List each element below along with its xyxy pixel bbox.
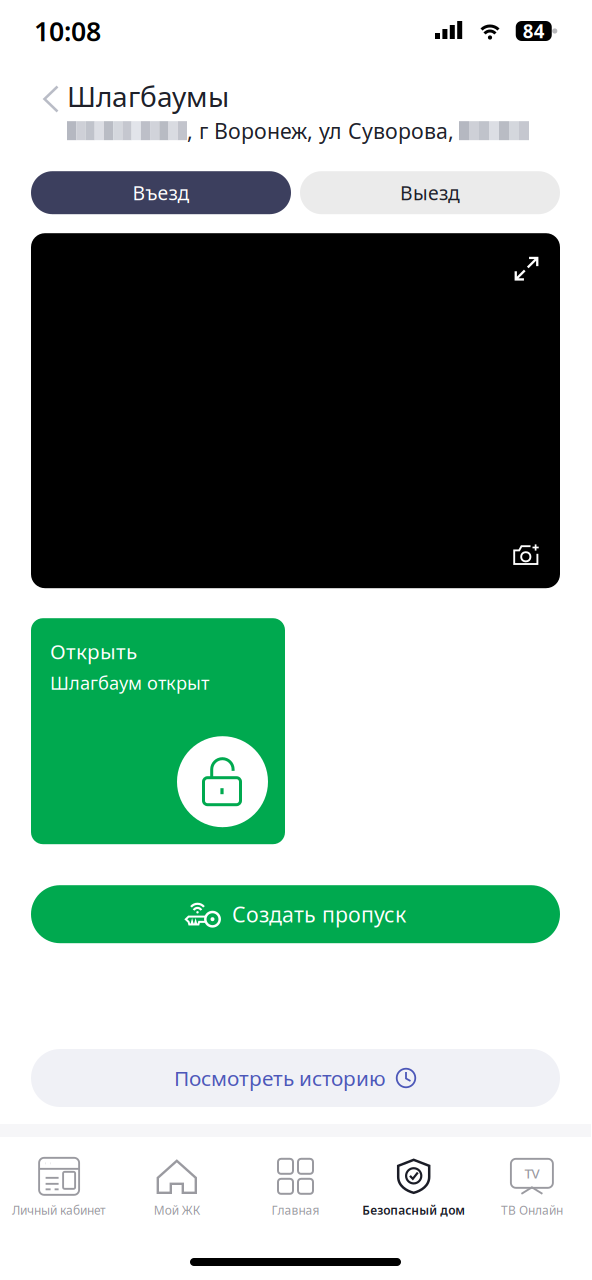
staticText: Личный кабинет: [12, 1202, 106, 1218]
button[interactable]: Снимок: [513, 544, 539, 565]
staticText: ТВ Онлайн: [501, 1202, 563, 1218]
staticText: Посмотреть историю: [174, 1064, 386, 1092]
staticText: Безопасный дом: [362, 1202, 465, 1218]
button[interactable]: Мой ЖК: [118, 1149, 236, 1226]
staticText: Главная: [271, 1202, 319, 1218]
staticText: TV: [524, 1164, 539, 1182]
staticText: Шлагбаум открыт: [50, 670, 209, 695]
button[interactable]: Личный кабинет: [0, 1149, 118, 1226]
button[interactable]: Создать пропуск: [31, 885, 560, 943]
button[interactable]: Посмотреть историю: [31, 1049, 560, 1107]
staticText: Открыть: [50, 637, 137, 665]
staticText: Въезд: [132, 179, 189, 206]
button[interactable]: Въезд: [31, 171, 291, 214]
staticText: , г Воронеж, ул Суворова,: [187, 116, 454, 145]
staticText: 10:08: [34, 13, 101, 49]
button[interactable]: Безопасный дом: [355, 1149, 473, 1226]
button[interactable]: TV: [473, 1149, 591, 1226]
staticText: Создать пропуск: [232, 900, 406, 929]
staticText: Мой ЖК: [154, 1202, 201, 1218]
staticText: Выезд: [400, 179, 460, 206]
button[interactable]: Открыть: [31, 618, 285, 844]
button[interactable]: Назад: [36, 77, 67, 121]
button[interactable]: Развернуть: [514, 256, 539, 281]
button[interactable]: Выезд: [300, 171, 560, 214]
staticText: 84: [523, 18, 545, 44]
button[interactable]: Главная: [236, 1149, 355, 1226]
staticText: Шлагбаумы: [67, 77, 229, 115]
